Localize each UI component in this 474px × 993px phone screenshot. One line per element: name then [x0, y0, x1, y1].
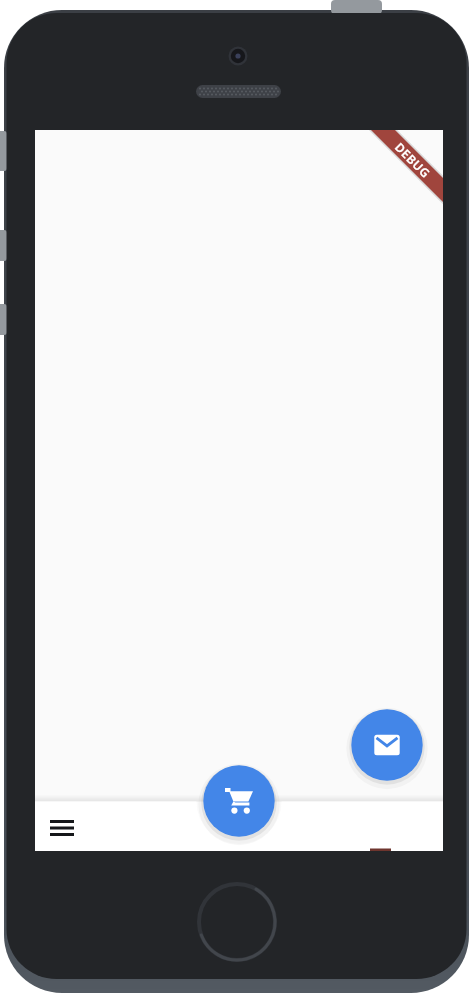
button[interactable] — [203, 765, 275, 837]
button[interactable] — [351, 709, 423, 781]
button[interactable] — [38, 813, 86, 843]
